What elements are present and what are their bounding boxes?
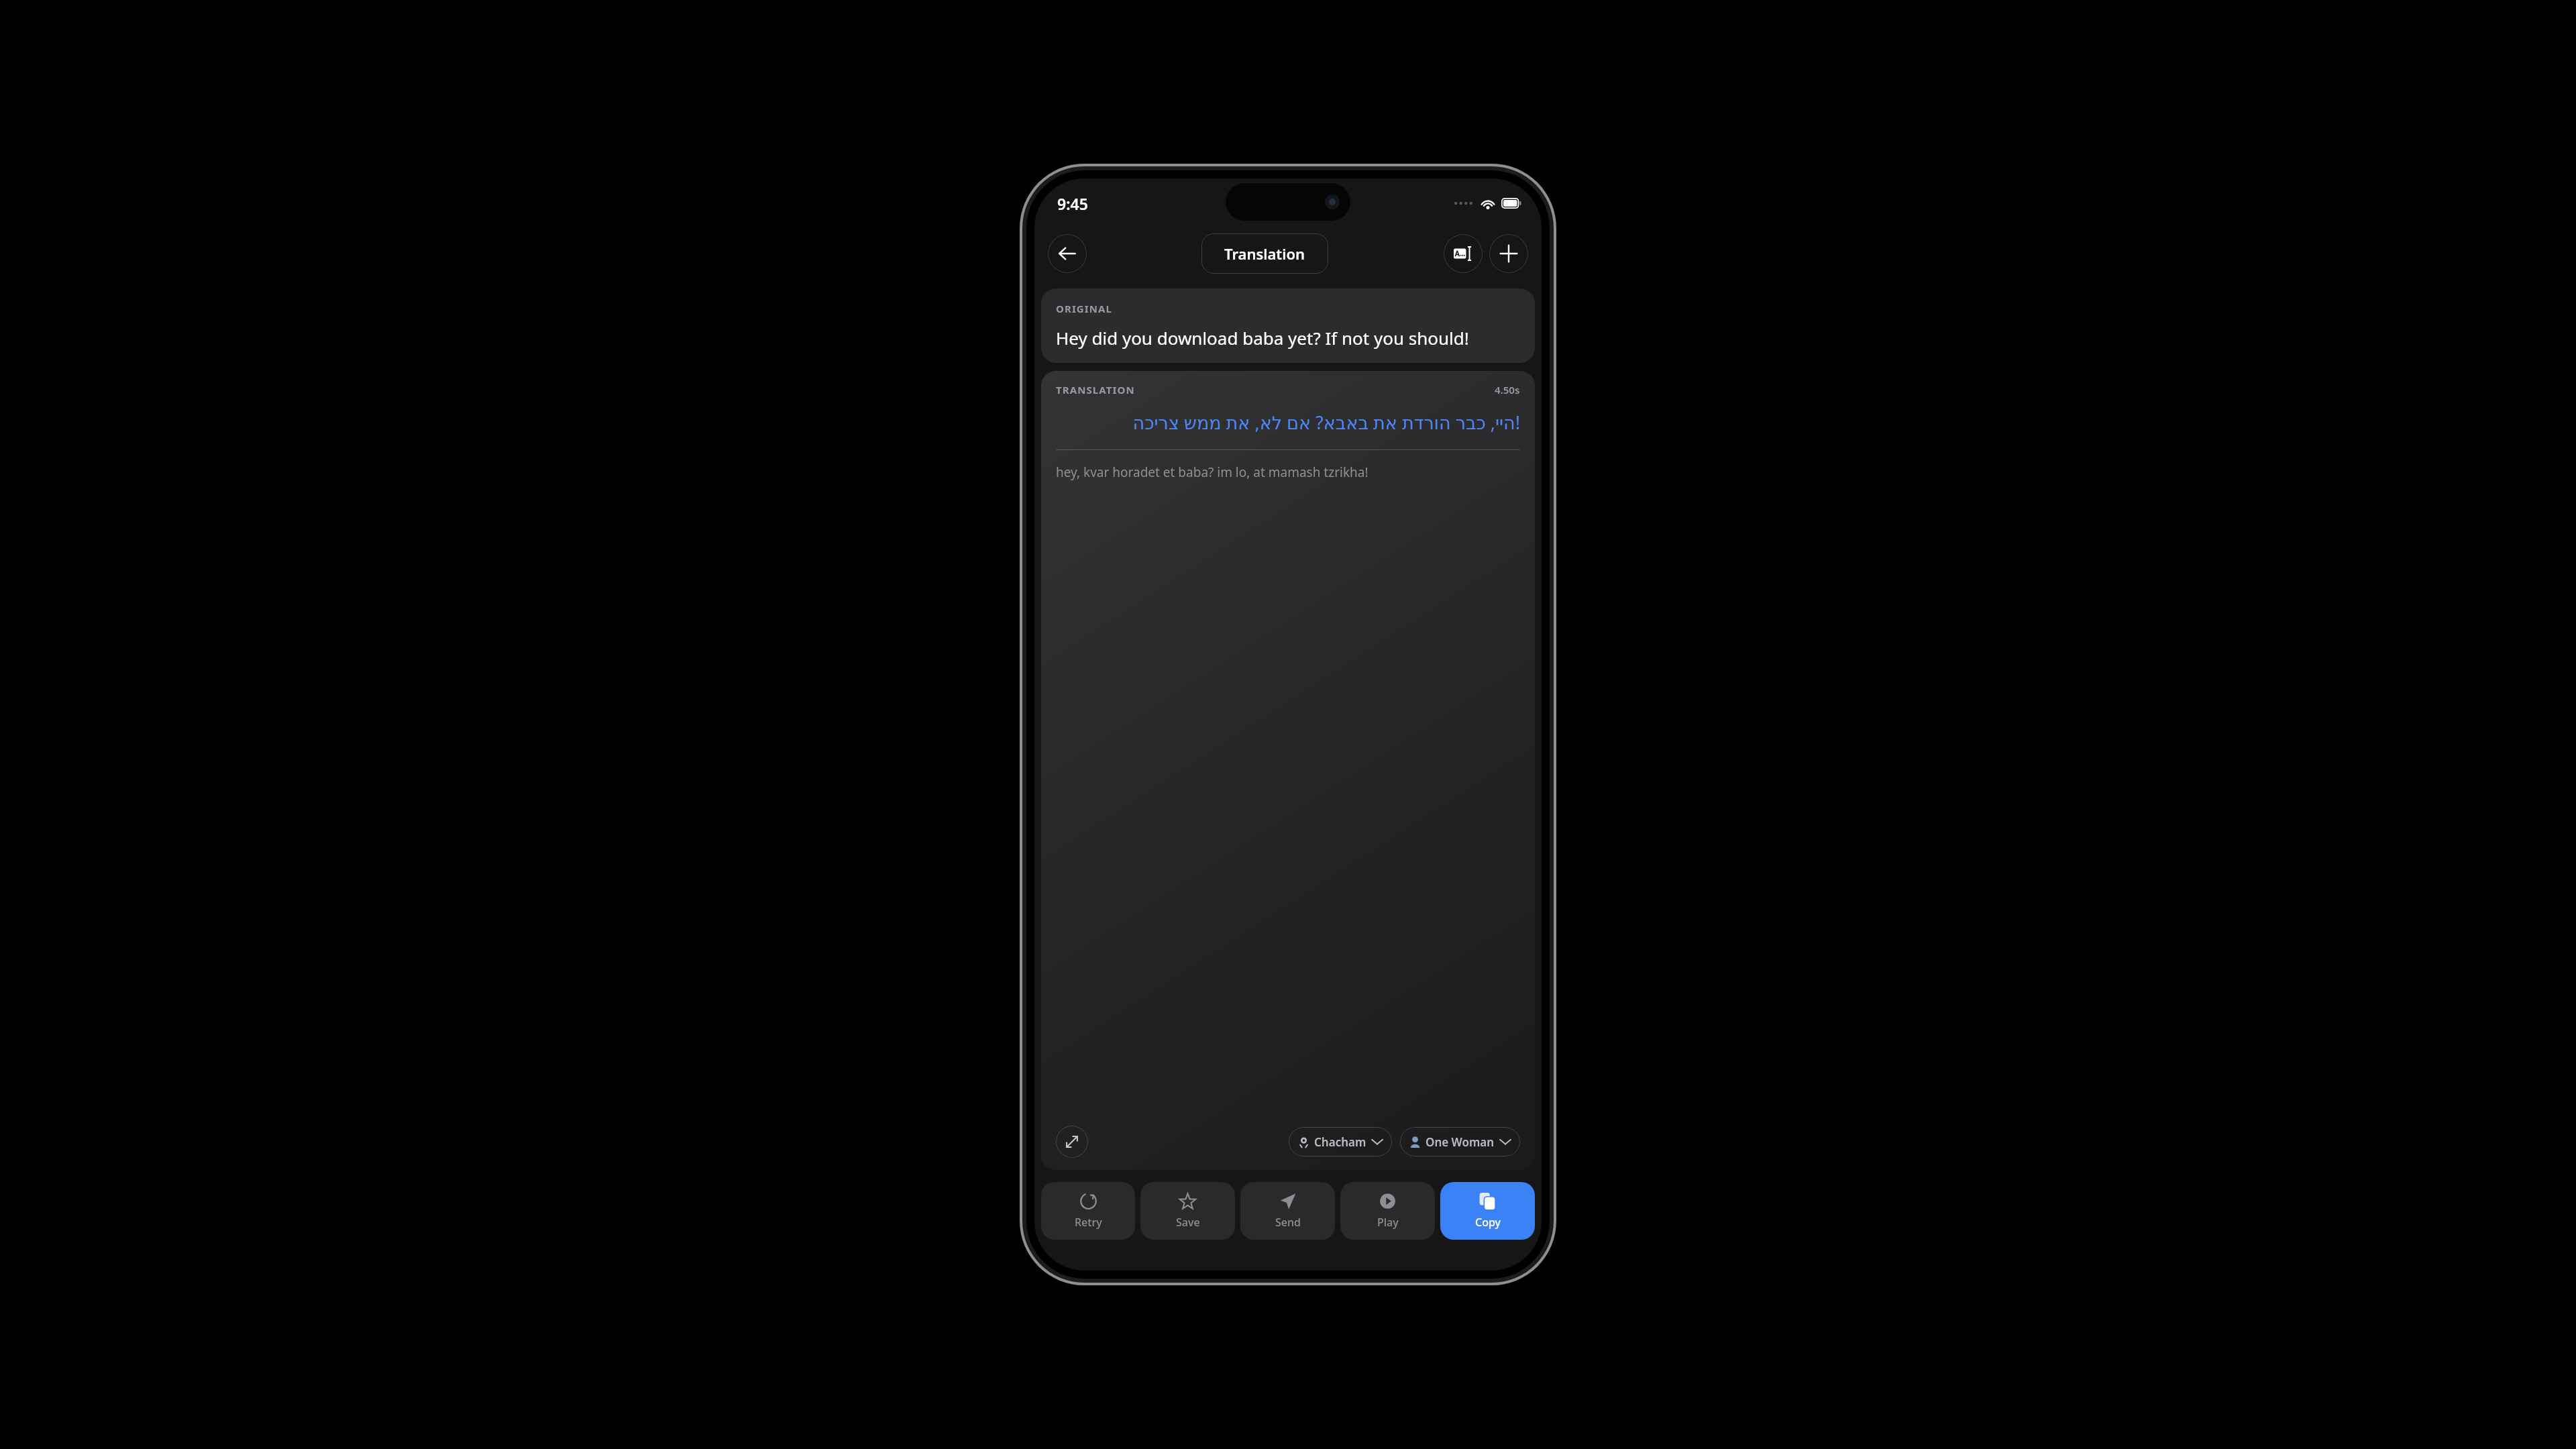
button[interactable]: Play bbox=[1340, 1182, 1435, 1240]
button[interactable]: Chacham bbox=[1289, 1127, 1392, 1157]
button[interactable]: Text format bbox=[1444, 234, 1483, 273]
button[interactable]: Translation bbox=[1201, 233, 1328, 274]
staticText: One Woman bbox=[1426, 1134, 1495, 1150]
staticText: 4.50s bbox=[1495, 383, 1520, 396]
staticText: TRANSLATION bbox=[1056, 383, 1135, 396]
staticText: 9:45 bbox=[1057, 193, 1088, 214]
button[interactable]: Back bbox=[1048, 234, 1087, 273]
button[interactable]: Retry bbox=[1041, 1182, 1135, 1240]
button[interactable]: Add bbox=[1489, 234, 1528, 273]
staticText: Save bbox=[1176, 1215, 1200, 1230]
button[interactable]: Expand bbox=[1056, 1126, 1088, 1158]
staticText: Retry bbox=[1075, 1215, 1102, 1230]
staticText: Send bbox=[1275, 1215, 1301, 1230]
staticText: Copy bbox=[1475, 1215, 1501, 1230]
staticText: hey, kvar horadet et baba? im lo, at mam… bbox=[1056, 464, 1368, 481]
button[interactable]: ORIGINAL bbox=[1041, 288, 1535, 363]
staticText: היי, כבר הורדת את באבא? אם לא, את ממש צר… bbox=[1056, 410, 1520, 435]
button[interactable]: Copy bbox=[1440, 1182, 1535, 1240]
staticText: ORIGINAL bbox=[1056, 302, 1112, 315]
staticText: Hey did you download baba yet? If not yo… bbox=[1056, 326, 1469, 350]
staticText: Play bbox=[1377, 1215, 1399, 1230]
staticText: Chacham bbox=[1314, 1134, 1366, 1150]
button[interactable]: One Woman bbox=[1400, 1127, 1520, 1157]
button[interactable]: Send bbox=[1240, 1182, 1335, 1240]
button[interactable]: Save bbox=[1140, 1182, 1235, 1240]
staticText: Translation bbox=[1224, 244, 1305, 264]
